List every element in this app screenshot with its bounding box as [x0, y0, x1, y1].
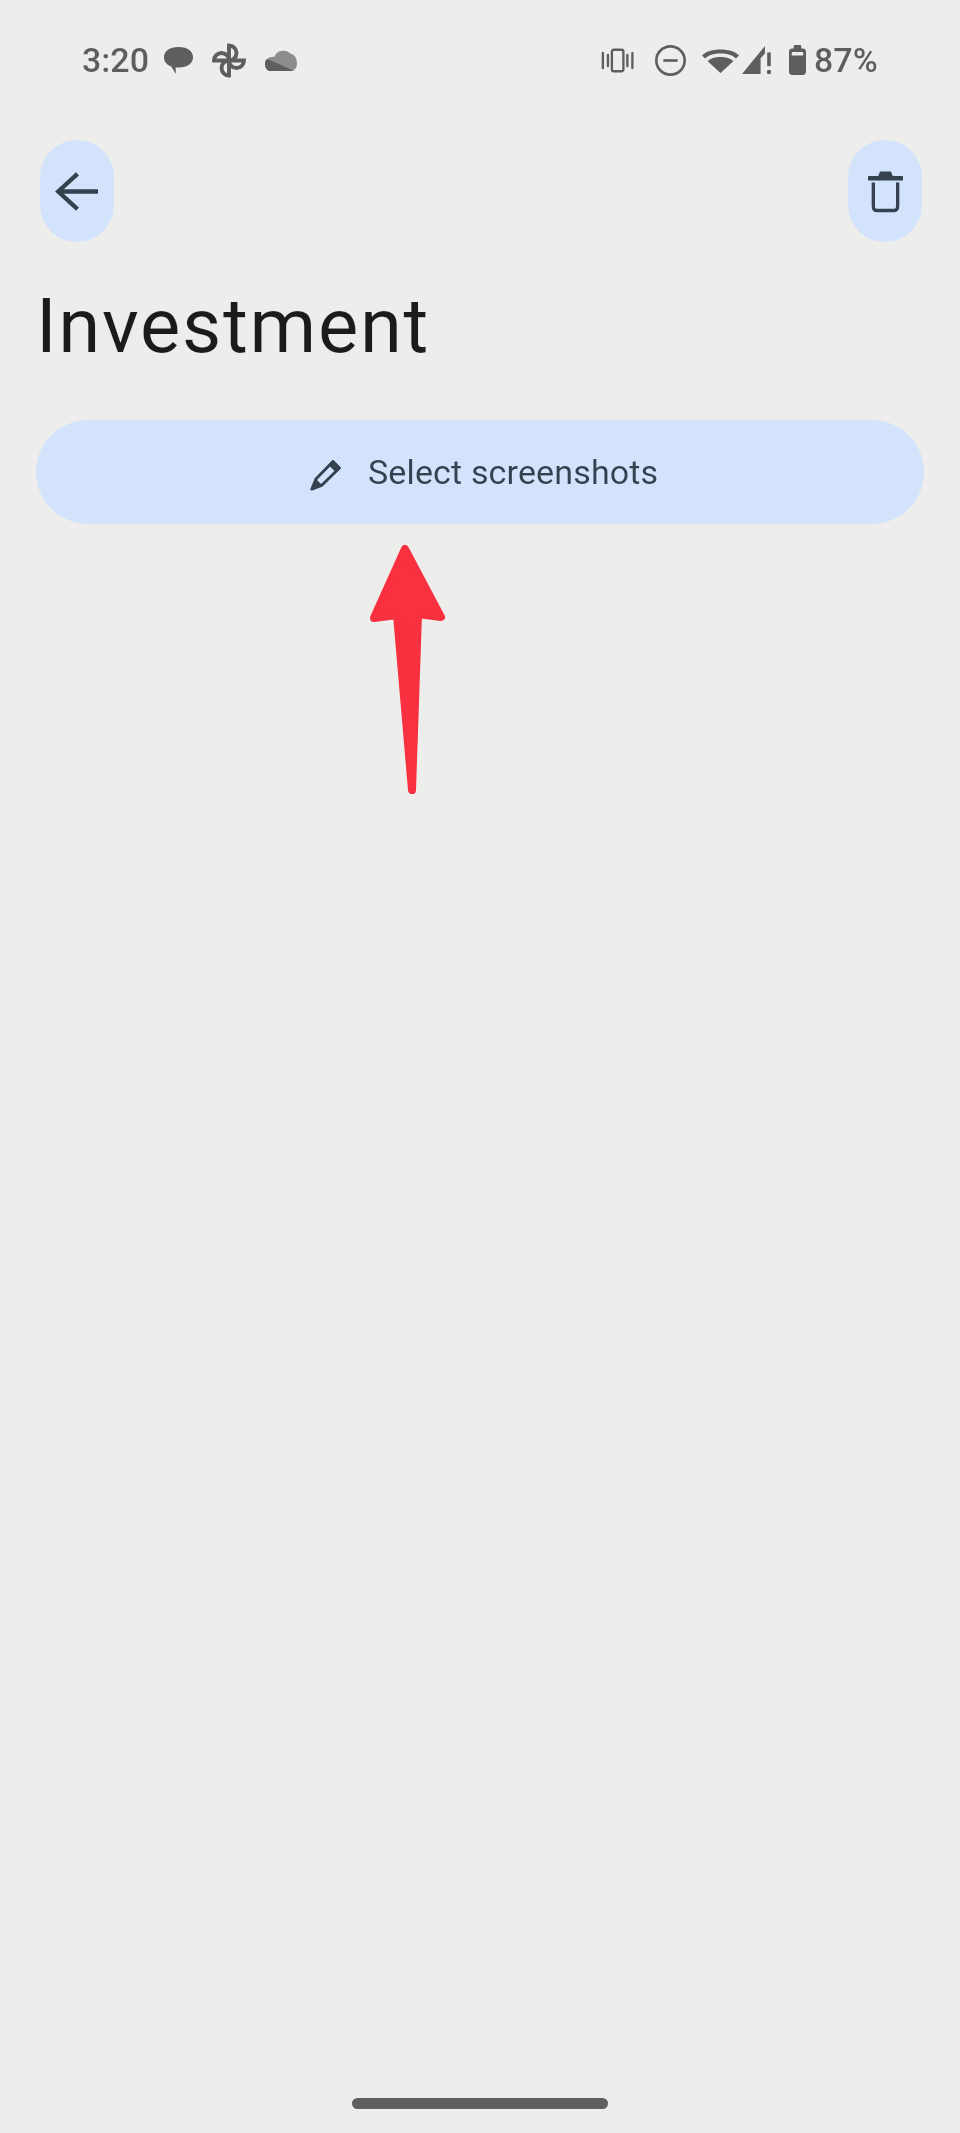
button[interactable]: Select screenshots — [36, 420, 924, 524]
staticText: Investment — [36, 281, 431, 370]
staticText: 87% — [814, 40, 878, 80]
button[interactable]: Delete — [848, 140, 922, 242]
staticText: Select screenshots — [368, 452, 659, 492]
staticText: 3:20 — [82, 40, 149, 80]
button[interactable]: Back — [40, 140, 114, 242]
